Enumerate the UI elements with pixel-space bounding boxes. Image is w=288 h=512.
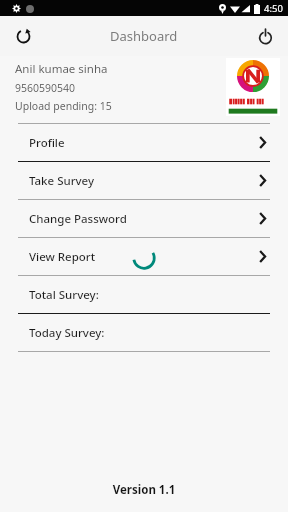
staticText: Change Password — [29, 211, 127, 227]
staticText: Profile — [29, 135, 65, 151]
button[interactable]: View Report — [0, 238, 288, 275]
button[interactable]: Logout — [248, 19, 282, 53]
staticText: Upload pending: 15 — [15, 99, 112, 113]
staticText: Total Survey: — [29, 287, 99, 303]
staticText: Dashboard — [110, 27, 178, 45]
button[interactable]: Change Password — [0, 200, 288, 237]
staticText: Take Survey — [29, 173, 95, 189]
staticText: Anil kumae sinha — [15, 61, 108, 77]
staticText: Version 1.1 — [0, 482, 288, 498]
staticText: 4:50 — [264, 2, 283, 15]
staticText: Today Survey: — [29, 325, 105, 341]
button[interactable]: Take Survey — [0, 162, 288, 199]
button[interactable]: Refresh — [6, 19, 40, 53]
staticText: View Report — [29, 249, 96, 265]
staticText: 9560590540 — [15, 81, 76, 95]
button[interactable]: Profile — [0, 124, 288, 161]
